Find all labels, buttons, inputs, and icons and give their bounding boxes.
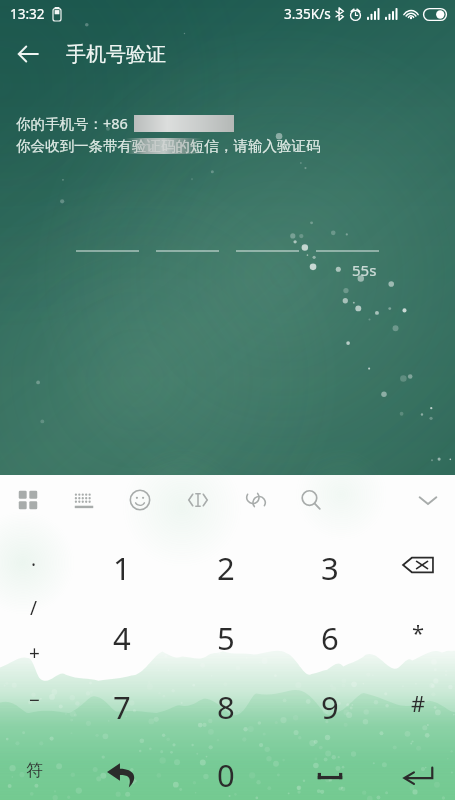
- button[interactable]: Shift: [86, 744, 158, 800]
- staticText: ·: [31, 552, 37, 578]
- button[interactable]: Keyboard: [61, 477, 107, 523]
- button[interactable]: Hide keyboard: [404, 476, 452, 524]
- button[interactable]: Enter: [382, 744, 454, 800]
- staticText: 5: [217, 617, 235, 659]
- staticText: 3.35K/s: [284, 5, 331, 23]
- button[interactable]: −: [0, 669, 70, 731]
- button[interactable]: 符: [0, 739, 70, 800]
- staticText: 0: [217, 754, 235, 796]
- button[interactable]: 8: [190, 676, 262, 738]
- button[interactable]: 2: [190, 537, 262, 599]
- button[interactable]: 0: [190, 744, 262, 800]
- staticText: 你会收到一条带有验证码的短信，请输入验证码: [16, 137, 321, 155]
- button[interactable]: 1: [86, 537, 158, 599]
- staticText: 55s: [352, 260, 377, 280]
- button[interactable]: *: [382, 601, 454, 663]
- staticText: #: [411, 688, 426, 718]
- button[interactable]: Emoji: [117, 477, 163, 523]
- staticText: 4: [113, 617, 131, 659]
- staticText: 13:32: [10, 5, 45, 23]
- staticText: *: [412, 617, 425, 647]
- staticText: 3: [321, 547, 339, 589]
- button[interactable]: Space: [294, 744, 366, 800]
- staticText: 你的手机号：+86: [16, 113, 128, 133]
- staticText: /: [30, 595, 38, 621]
- button[interactable]: 55s: [350, 258, 379, 282]
- staticText: 符: [26, 760, 43, 781]
- staticText: 7: [113, 686, 131, 728]
- button[interactable]: /: [0, 577, 70, 639]
- button[interactable]: 5: [190, 607, 262, 669]
- button[interactable]: #: [382, 672, 454, 734]
- button[interactable]: 3: [294, 537, 366, 599]
- button[interactable]: Panels: [5, 477, 51, 523]
- staticText: 6: [321, 617, 339, 659]
- button[interactable]: Back: [0, 28, 56, 80]
- staticText: −: [29, 687, 40, 713]
- button[interactable]: ·: [0, 534, 70, 596]
- button[interactable]: 6: [294, 607, 366, 669]
- button[interactable]: 7: [86, 676, 158, 738]
- button[interactable]: Backspace: [382, 534, 454, 596]
- button[interactable]: 9: [294, 676, 366, 738]
- staticText: +: [29, 640, 40, 666]
- button[interactable]: Search: [288, 477, 334, 523]
- button[interactable]: Clipboard: [233, 477, 279, 523]
- staticText: 8: [217, 686, 235, 728]
- staticText: 手机号验证: [66, 42, 166, 67]
- staticText: 9: [321, 686, 339, 728]
- staticText: 2: [217, 547, 235, 589]
- staticText: 1: [113, 547, 131, 589]
- button[interactable]: Text editing: [175, 477, 221, 523]
- button[interactable]: 4: [86, 607, 158, 669]
- button[interactable]: +: [0, 622, 70, 684]
